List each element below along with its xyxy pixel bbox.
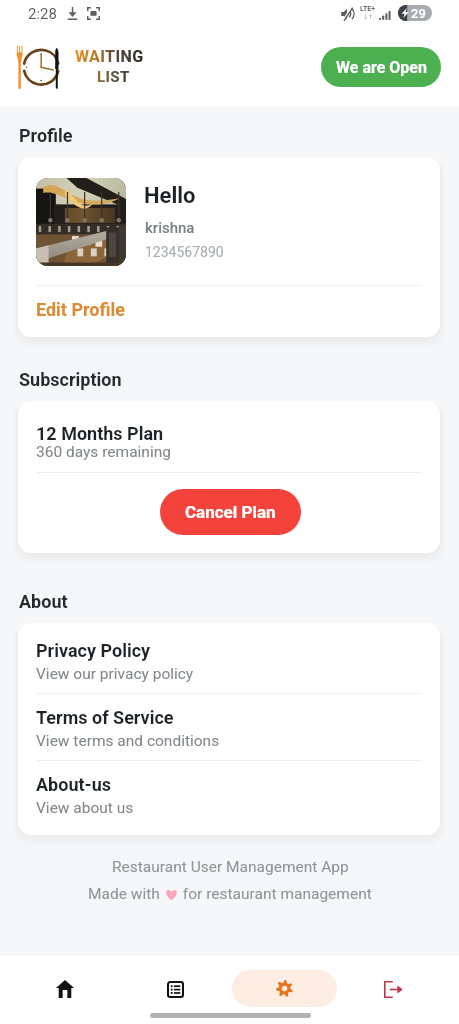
button[interactable]: Logout — [361, 966, 425, 1012]
staticText: About — [19, 591, 68, 612]
staticText: View terms and conditions — [36, 732, 220, 750]
button[interactable]: Cancel Plan — [160, 489, 301, 535]
button[interactable]: About-us — [18, 757, 440, 824]
staticText: Terms of Service — [36, 707, 174, 728]
button[interactable]: Home — [33, 966, 97, 1012]
button[interactable]: Settings — [232, 970, 337, 1007]
staticText: Profile — [19, 125, 73, 146]
staticText: Privacy Policy — [36, 640, 151, 661]
staticText: View about us — [36, 799, 134, 817]
button[interactable]: Edit Profile — [36, 299, 125, 320]
button[interactable]: Terms of Service — [18, 690, 440, 757]
staticText: Subscription — [19, 369, 122, 390]
staticText: Restaurant User Management App — [112, 858, 349, 876]
staticText: Cancel Plan — [185, 502, 276, 522]
button[interactable]: Orders — [143, 966, 207, 1012]
staticText: 29 — [411, 6, 426, 21]
staticText: Hello — [144, 183, 196, 209]
button[interactable]: We are Open — [321, 47, 441, 87]
staticText: krishna — [145, 219, 195, 237]
staticText: Edit Profile — [36, 299, 125, 320]
staticText: for restaurant management — [179, 885, 372, 903]
button[interactable]: Privacy Policy — [18, 623, 440, 690]
staticText: 2:28 — [28, 5, 57, 23]
staticText: View our privacy policy — [36, 665, 194, 683]
staticText: LIST — [97, 68, 130, 86]
staticText: We are Open — [336, 58, 427, 77]
staticText: 1234567890 — [145, 244, 224, 260]
staticText: LTE+ — [360, 5, 376, 13]
staticText: Made with — [88, 885, 164, 903]
staticText: ↓↑ — [363, 13, 374, 20]
staticText: WAITING — [75, 47, 144, 66]
staticText: 12 Months Plan — [36, 423, 164, 444]
staticText: About-us — [36, 774, 111, 795]
staticText: 360 days remaining — [36, 443, 171, 461]
